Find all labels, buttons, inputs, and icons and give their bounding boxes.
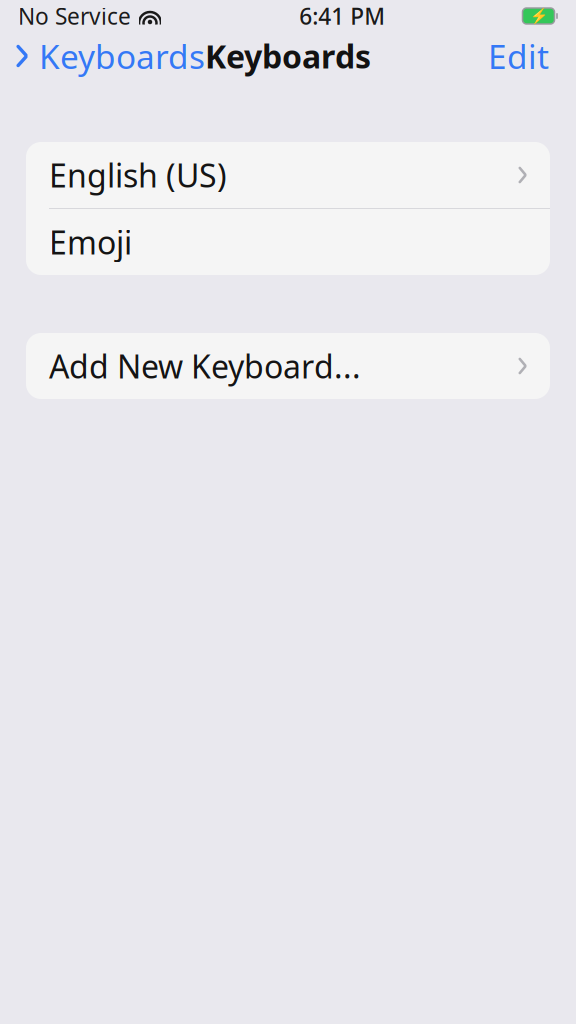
button[interactable]: Keyboards <box>0 28 205 84</box>
staticText: Emoji <box>49 221 132 263</box>
staticText: 6:41 PM <box>299 1 385 31</box>
button[interactable]: English (US) <box>26 142 550 208</box>
staticText: ⚡ <box>529 8 547 24</box>
button[interactable]: Edit <box>488 28 576 84</box>
staticText: Edit <box>488 34 549 78</box>
staticText: No Service <box>18 1 131 31</box>
staticText: Keyboards <box>205 35 371 77</box>
button[interactable]: Add New Keyboard... <box>26 333 550 399</box>
button[interactable]: Emoji <box>26 209 550 275</box>
staticText: Add New Keyboard... <box>49 345 361 387</box>
staticText: Keyboards <box>39 34 205 78</box>
staticText: English (US) <box>49 154 227 196</box>
